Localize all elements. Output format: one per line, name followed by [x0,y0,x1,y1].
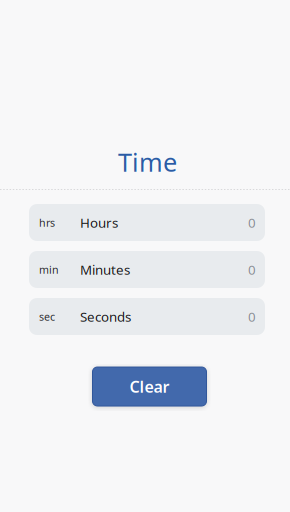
button[interactable]: hrs [29,204,265,241]
staticText: 0 [248,308,256,325]
staticText: 0 [248,214,256,231]
staticText: Minutes [80,261,130,278]
staticText: Clear [129,376,169,397]
staticText: Seconds [80,308,131,325]
button[interactable]: Clear [92,367,206,406]
staticText: Time [118,145,177,179]
button[interactable]: sec [29,298,265,335]
button[interactable]: min [29,251,265,288]
staticText: hrs [39,215,55,230]
staticText: Hours [80,214,118,231]
staticText: min [39,262,59,277]
staticText: 0 [248,261,256,278]
staticText: sec [39,309,55,324]
